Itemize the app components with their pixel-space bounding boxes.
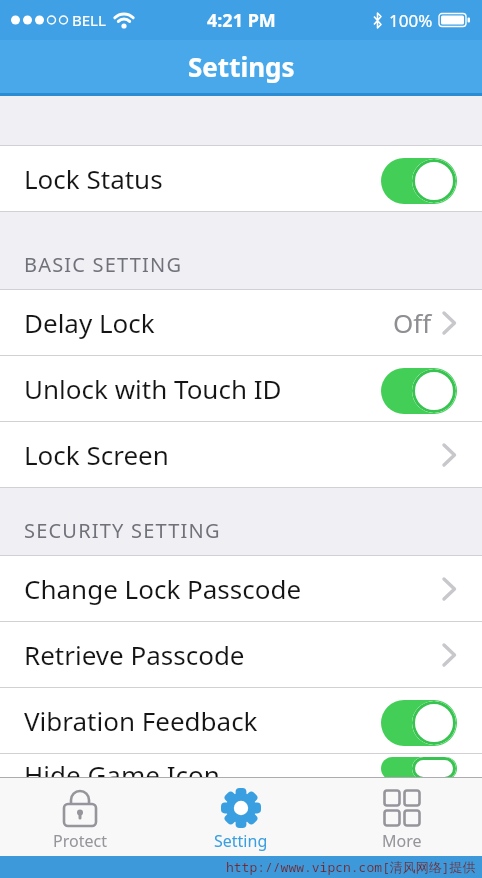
staticText: Setting bbox=[214, 830, 268, 852]
staticText: Delay Lock bbox=[24, 305, 155, 340]
staticText: 100% bbox=[389, 9, 433, 32]
staticText: Vibration Feedback bbox=[24, 703, 258, 738]
button[interactable]: Lock Status bbox=[0, 146, 482, 211]
staticText: Hide Game Icon bbox=[24, 757, 220, 777]
button[interactable] bbox=[381, 158, 457, 204]
button[interactable]: Protect bbox=[0, 778, 160, 856]
staticText: SECURITY SETTING bbox=[24, 517, 221, 544]
button[interactable]: Change Lock Passcode bbox=[0, 556, 482, 621]
staticText: More bbox=[382, 830, 422, 852]
staticText: Settings bbox=[188, 49, 295, 84]
button[interactable]: Delay Lock bbox=[0, 290, 482, 355]
staticText: BELL bbox=[72, 10, 106, 30]
staticText: http://www.vipcn.com[清风网络]提供 bbox=[226, 858, 476, 876]
button[interactable] bbox=[381, 700, 457, 746]
button[interactable]: Vibration Feedback bbox=[0, 688, 482, 753]
staticText: Off bbox=[393, 305, 432, 340]
staticText: Lock Screen bbox=[24, 437, 169, 472]
staticText: BASIC SETTING bbox=[24, 251, 183, 278]
staticText: Lock Status bbox=[24, 161, 163, 196]
staticText: Retrieve Passcode bbox=[24, 637, 245, 672]
button[interactable]: Setting bbox=[160, 778, 321, 856]
button[interactable]: Retrieve Passcode bbox=[0, 622, 482, 687]
staticText: Change Lock Passcode bbox=[24, 571, 302, 606]
button[interactable] bbox=[381, 757, 457, 777]
button[interactable] bbox=[381, 368, 457, 414]
button[interactable]: More bbox=[321, 778, 482, 856]
button[interactable]: Lock Screen bbox=[0, 422, 482, 487]
staticText: Unlock with Touch ID bbox=[24, 371, 282, 406]
staticText: Protect bbox=[53, 830, 107, 852]
staticText: 4:21 PM bbox=[207, 8, 276, 33]
button[interactable]: Unlock with Touch ID bbox=[0, 356, 482, 421]
